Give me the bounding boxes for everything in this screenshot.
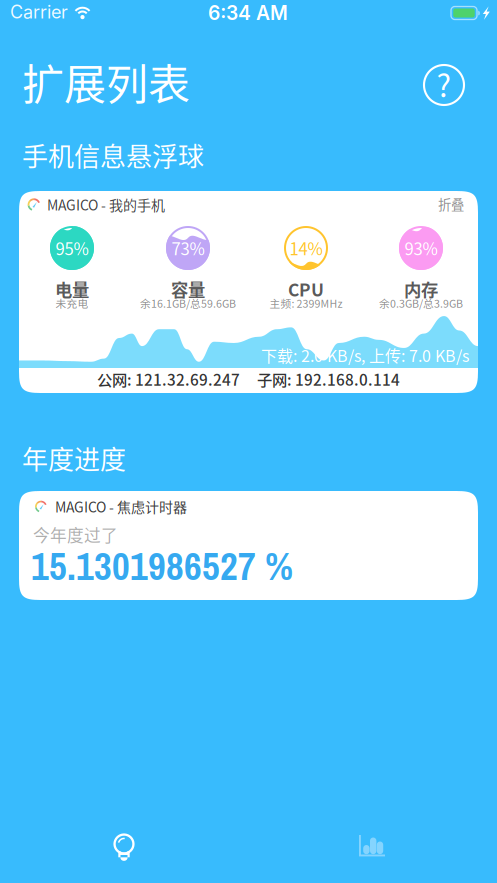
button[interactable]: Tools (86, 820, 162, 874)
staticText: ? (436, 62, 451, 106)
staticText: 73% (171, 236, 204, 260)
staticText: 内存 (404, 276, 438, 302)
staticText: 未充电 (55, 295, 88, 311)
staticText: Carrier (10, 1, 68, 23)
staticText: 主频: 2399MHz (269, 295, 342, 311)
staticText: 15.1301986527 % (31, 540, 293, 592)
staticText: 今年度过了 (33, 522, 118, 546)
button[interactable]: Statistics (334, 820, 410, 874)
staticText: 容量 (171, 276, 205, 302)
staticText: CPU (288, 276, 324, 302)
staticText: 6:34 AM (208, 1, 288, 25)
button[interactable]: Help (419, 60, 469, 110)
staticText: MAGICO - 我的手机 (47, 194, 165, 215)
staticText: 余0.3GB/总3.9GB (379, 295, 463, 311)
staticText: 年度进度 (22, 439, 126, 477)
staticText: 折叠 (438, 194, 464, 214)
staticText: 手机信息悬浮球 (22, 136, 204, 174)
button[interactable]: 折叠 (418, 194, 464, 214)
staticText: 余16.1GB/总59.6GB (140, 295, 236, 311)
staticText: 93% (404, 236, 437, 260)
staticText: MAGICO - 焦虑计时器 (55, 496, 187, 517)
staticText: 子网: 192.168.0.114 (257, 368, 400, 390)
staticText: 电量 (55, 276, 89, 302)
staticText: 95% (55, 236, 88, 260)
staticText: 下载: 2.0 KB/s, 上传: 7.0 KB/s (261, 343, 469, 367)
staticText: 扩展列表 (22, 51, 190, 112)
staticText: 14% (289, 236, 322, 260)
staticText: 公网: 121.32.69.247 (97, 368, 240, 390)
